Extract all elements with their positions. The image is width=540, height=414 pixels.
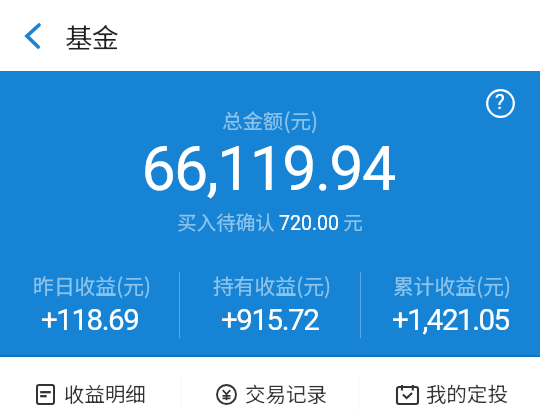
staticText: 总金额(元) [0, 105, 540, 135]
staticText: +1,421.05 [392, 303, 509, 338]
staticText: 交易记录 [245, 378, 327, 408]
button[interactable]: Back [8, 11, 58, 61]
staticText: 持有收益(元) [213, 270, 332, 300]
button[interactable]: 交易记录 [180, 357, 360, 414]
staticText: 基金 [65, 17, 119, 56]
staticText: +118.69 [41, 303, 139, 338]
staticText: 66,119.94 [0, 133, 538, 204]
staticText: +915.72 [221, 303, 319, 338]
staticText: ? [495, 90, 505, 114]
button[interactable]: 我的定投 [360, 357, 540, 414]
staticText: 昨日收益(元) [33, 270, 152, 300]
button[interactable]: Help [484, 87, 516, 119]
staticText: 我的定投 [426, 378, 508, 408]
staticText: 买入待确认 720.00 元 [0, 207, 540, 235]
staticText: 累计收益(元) [393, 270, 512, 300]
staticText: 收益明细 [64, 378, 146, 408]
button[interactable]: 收益明细 [0, 357, 180, 414]
